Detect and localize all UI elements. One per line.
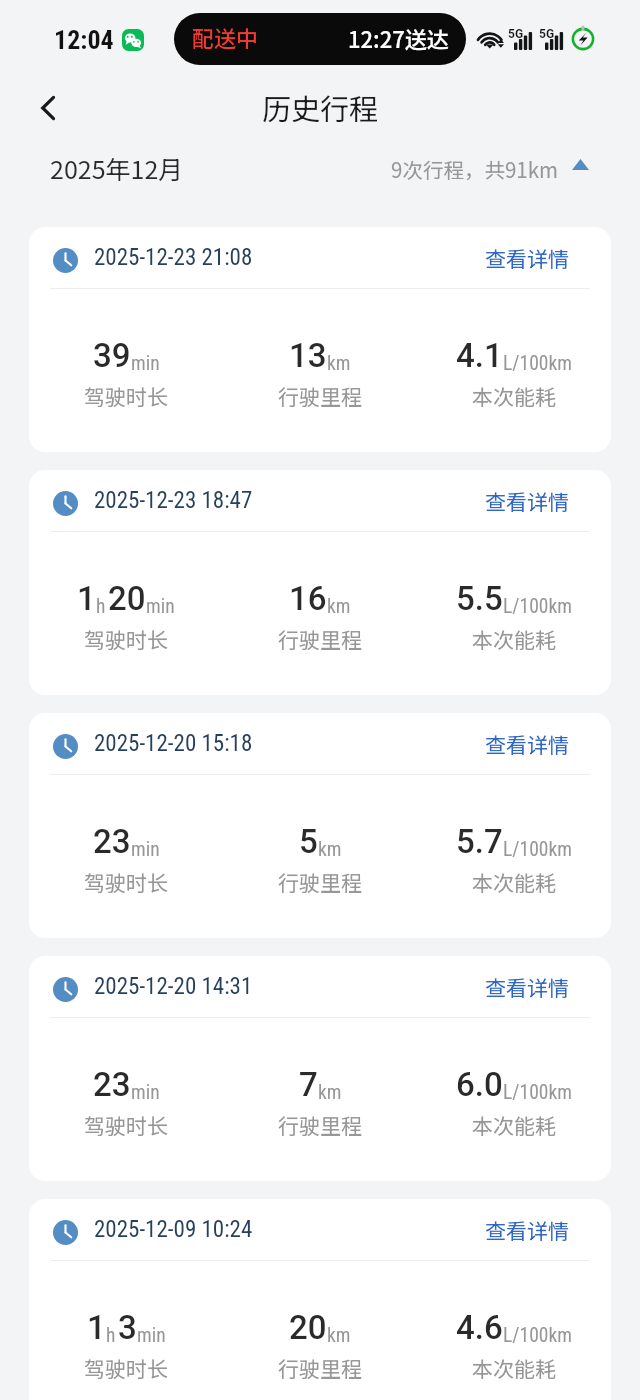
- staticText: L/100km: [503, 1081, 572, 1104]
- staticText: 12:04: [54, 25, 114, 55]
- staticText: 本次能耗: [472, 624, 556, 654]
- staticText: L/100km: [503, 1324, 572, 1347]
- staticText: km: [318, 838, 342, 861]
- staticText: 2025-12-23 21:08: [94, 244, 253, 271]
- staticText: 9次行程，共91km: [391, 154, 558, 184]
- staticText: 12:27送达: [348, 22, 449, 54]
- staticText: km: [327, 595, 351, 618]
- staticText: 20: [108, 579, 146, 618]
- staticText: 5.5: [456, 579, 503, 618]
- button[interactable]: 查看详情: [485, 972, 569, 1002]
- button[interactable]: 2025-12-09 10:24: [29, 1199, 611, 1400]
- staticText: 5: [299, 822, 318, 861]
- button[interactable]: 查看详情: [485, 486, 569, 516]
- staticText: 配送中: [192, 21, 259, 53]
- staticText: 本次能耗: [472, 1353, 556, 1383]
- button[interactable]: Back: [26, 86, 68, 128]
- staticText: 23: [93, 822, 131, 861]
- staticText: 2025-12-09 10:24: [94, 1216, 253, 1243]
- staticText: min: [131, 1081, 160, 1104]
- staticText: min: [146, 595, 175, 618]
- staticText: L/100km: [503, 838, 572, 861]
- button[interactable]: 2025-12-20 14:31: [29, 956, 611, 1181]
- staticText: 4.6: [456, 1308, 503, 1347]
- staticText: 6.0: [456, 1065, 503, 1104]
- button[interactable]: 9次行程，共91km: [391, 145, 589, 175]
- staticText: 39: [93, 336, 131, 375]
- staticText: km: [327, 1324, 351, 1347]
- button[interactable]: 2025-12-23 21:08: [29, 227, 611, 452]
- staticText: 4.1: [456, 336, 503, 375]
- staticText: 驾驶时长: [84, 624, 168, 654]
- staticText: 5G: [539, 27, 555, 41]
- staticText: 本次能耗: [472, 867, 556, 897]
- staticText: 驾驶时长: [84, 381, 168, 411]
- staticText: 5.7: [456, 822, 503, 861]
- button[interactable]: 2025-12-23 18:47: [29, 470, 611, 695]
- staticText: 1: [77, 579, 96, 618]
- staticText: 行驶里程: [278, 867, 362, 897]
- staticText: min: [137, 1324, 166, 1347]
- staticText: 本次能耗: [472, 381, 556, 411]
- staticText: min: [131, 352, 160, 375]
- staticText: 3: [118, 1308, 137, 1347]
- staticText: km: [318, 1081, 342, 1104]
- button[interactable]: 2025-12-20 15:18: [29, 713, 611, 938]
- staticText: 2025-12-23 18:47: [94, 487, 253, 514]
- staticText: 13: [289, 336, 327, 375]
- button[interactable]: 查看详情: [485, 243, 569, 273]
- staticText: 行驶里程: [278, 1110, 362, 1140]
- staticText: 7: [299, 1065, 318, 1104]
- staticText: 2025-12-20 15:18: [94, 730, 253, 757]
- staticText: 行驶里程: [278, 624, 362, 654]
- staticText: 20: [289, 1308, 327, 1347]
- button[interactable]: 查看详情: [485, 729, 569, 759]
- staticText: 行驶里程: [278, 381, 362, 411]
- staticText: 5G: [508, 27, 524, 41]
- staticText: 23: [93, 1065, 131, 1104]
- staticText: 驾驶时长: [84, 867, 168, 897]
- staticText: L/100km: [503, 595, 572, 618]
- staticText: min: [131, 838, 160, 861]
- staticText: 历史行程: [262, 86, 379, 128]
- staticText: h: [106, 1324, 116, 1347]
- staticText: 驾驶时长: [84, 1110, 168, 1140]
- staticText: 2025-12-20 14:31: [94, 973, 253, 1000]
- staticText: 16: [289, 579, 327, 618]
- staticText: 1: [87, 1308, 106, 1347]
- staticText: 2025年12月: [50, 150, 184, 186]
- button[interactable]: 查看详情: [485, 1215, 569, 1245]
- staticText: 本次能耗: [472, 1110, 556, 1140]
- staticText: L/100km: [503, 352, 572, 375]
- staticText: km: [327, 352, 351, 375]
- staticText: 驾驶时长: [84, 1353, 168, 1383]
- staticText: 行驶里程: [278, 1353, 362, 1383]
- staticText: h: [96, 595, 106, 618]
